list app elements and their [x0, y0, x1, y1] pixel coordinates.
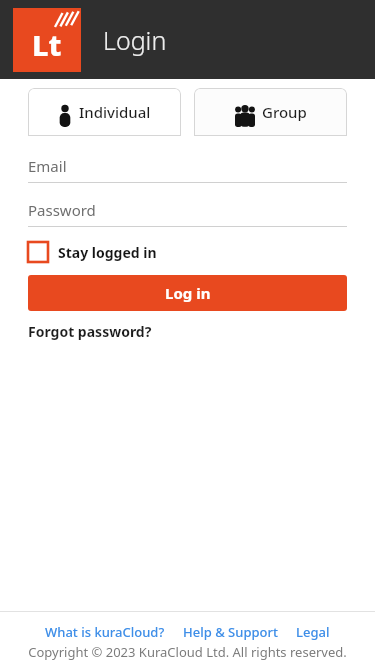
staticText: Group — [262, 102, 307, 122]
staticText: Password — [28, 200, 96, 220]
button[interactable]: Forgot password? — [28, 322, 152, 341]
button[interactable]: Legal — [296, 623, 330, 641]
staticText: Help & Support — [183, 623, 278, 641]
staticText: Stay logged in — [58, 243, 157, 262]
staticText: Legal — [296, 623, 330, 641]
button[interactable]: Password — [28, 200, 347, 227]
button[interactable]: Group — [194, 88, 347, 136]
staticText: Login — [103, 23, 167, 57]
staticText: What is kuraCloud? — [45, 623, 165, 641]
staticText: Copyright © 2023 KuraCloud Ltd. All righ… — [0, 643, 375, 661]
button[interactable]: What is kuraCloud? — [45, 623, 165, 641]
button[interactable]: Stay logged in — [28, 242, 157, 262]
staticText: Email — [28, 156, 67, 176]
button[interactable]: Email — [28, 156, 347, 183]
button[interactable]: Individual — [28, 88, 181, 136]
staticText: Individual — [79, 102, 151, 122]
button[interactable]: Help & Support — [183, 623, 278, 641]
staticText: Lt — [32, 25, 62, 64]
button[interactable]: Log in — [28, 275, 347, 311]
staticText: Log in — [165, 283, 211, 303]
